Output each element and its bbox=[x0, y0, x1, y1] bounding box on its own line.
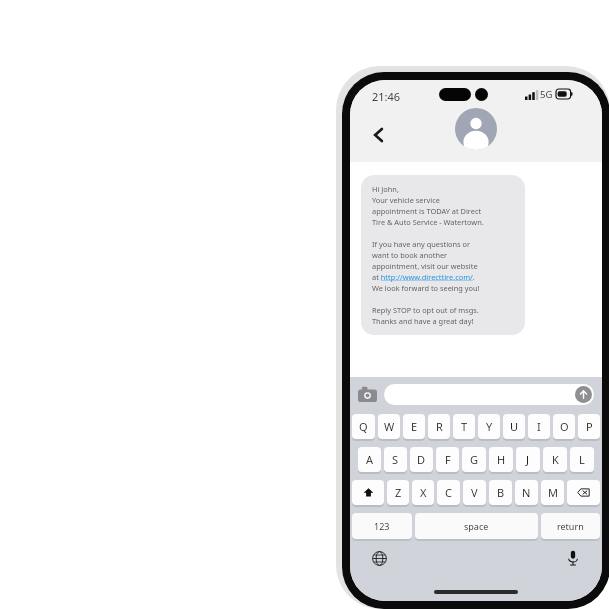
button[interactable]: Shift bbox=[352, 480, 384, 505]
staticText: I bbox=[537, 419, 541, 434]
button[interactable]: U bbox=[503, 414, 525, 439]
button[interactable]: H bbox=[489, 447, 513, 472]
staticText: N bbox=[522, 485, 531, 500]
button[interactable]: R bbox=[428, 414, 450, 439]
button[interactable]: Send bbox=[575, 386, 592, 403]
button[interactable]: O bbox=[553, 414, 575, 439]
button[interactable]: F bbox=[436, 447, 459, 472]
button[interactable]: Change keyboard bbox=[368, 547, 390, 569]
button[interactable]: E bbox=[403, 414, 425, 439]
staticText: B bbox=[497, 485, 505, 500]
button[interactable]: W bbox=[378, 414, 400, 439]
staticText: 123 bbox=[374, 520, 390, 532]
button[interactable]: M bbox=[541, 480, 564, 505]
button[interactable]: Z bbox=[387, 480, 409, 505]
button[interactable]: space bbox=[415, 513, 538, 539]
button[interactable]: return bbox=[541, 513, 600, 539]
staticText: 5G bbox=[540, 88, 553, 101]
button[interactable]: Contact avatar bbox=[455, 108, 497, 150]
button[interactable]: A bbox=[358, 447, 381, 472]
staticText: S bbox=[392, 452, 399, 467]
button[interactable]: Y bbox=[478, 414, 500, 439]
button[interactable]: B bbox=[489, 480, 512, 505]
staticText: D bbox=[417, 452, 426, 467]
staticText: C bbox=[445, 485, 452, 500]
staticText: J bbox=[526, 452, 530, 467]
staticText: P bbox=[586, 419, 593, 434]
button[interactable]: S bbox=[384, 447, 407, 472]
button[interactable]: X bbox=[412, 480, 434, 505]
staticText: T bbox=[461, 419, 468, 434]
staticText: Hi John, Your vehicle service appointmen… bbox=[372, 184, 484, 326]
button[interactable]: T bbox=[453, 414, 475, 439]
staticText: space bbox=[464, 520, 489, 532]
staticText: H bbox=[497, 452, 506, 467]
button[interactable]: Backspace bbox=[567, 480, 600, 505]
button[interactable]: G bbox=[462, 447, 486, 472]
staticText: M bbox=[548, 485, 558, 500]
staticText: Y bbox=[486, 419, 493, 434]
staticText: V bbox=[471, 485, 478, 500]
button[interactable]: J bbox=[516, 447, 540, 472]
button[interactable]: P bbox=[578, 414, 600, 439]
button[interactable]: 123 bbox=[352, 513, 412, 539]
staticText: G bbox=[470, 452, 479, 467]
staticText: L bbox=[579, 452, 585, 467]
staticText: Z bbox=[395, 485, 402, 500]
button[interactable]: Camera bbox=[358, 386, 377, 402]
button[interactable]: Send bbox=[384, 384, 594, 405]
button[interactable]: Hi John, Your vehicle service appointmen… bbox=[361, 175, 525, 335]
button[interactable]: K bbox=[543, 447, 567, 472]
button[interactable]: V bbox=[463, 480, 486, 505]
staticText: X bbox=[420, 485, 427, 500]
staticText: K bbox=[552, 452, 559, 467]
button[interactable]: N bbox=[515, 480, 538, 505]
button[interactable]: Dictation bbox=[562, 547, 584, 569]
staticText: E bbox=[411, 419, 418, 434]
staticText: R bbox=[436, 419, 443, 434]
button[interactable]: I bbox=[528, 414, 550, 439]
staticText: 21:46 bbox=[372, 89, 401, 104]
button[interactable]: Q bbox=[352, 414, 375, 439]
staticText: Q bbox=[359, 419, 368, 434]
button[interactable]: D bbox=[410, 447, 433, 472]
staticText: F bbox=[445, 452, 451, 467]
button[interactable]: Back bbox=[364, 120, 394, 150]
staticText: return bbox=[557, 520, 584, 532]
button[interactable]: L bbox=[570, 447, 594, 472]
staticText: U bbox=[510, 419, 519, 434]
button[interactable]: C bbox=[437, 480, 460, 505]
staticText: A bbox=[366, 452, 374, 467]
staticText: W bbox=[384, 419, 395, 434]
staticText: O bbox=[560, 419, 569, 434]
